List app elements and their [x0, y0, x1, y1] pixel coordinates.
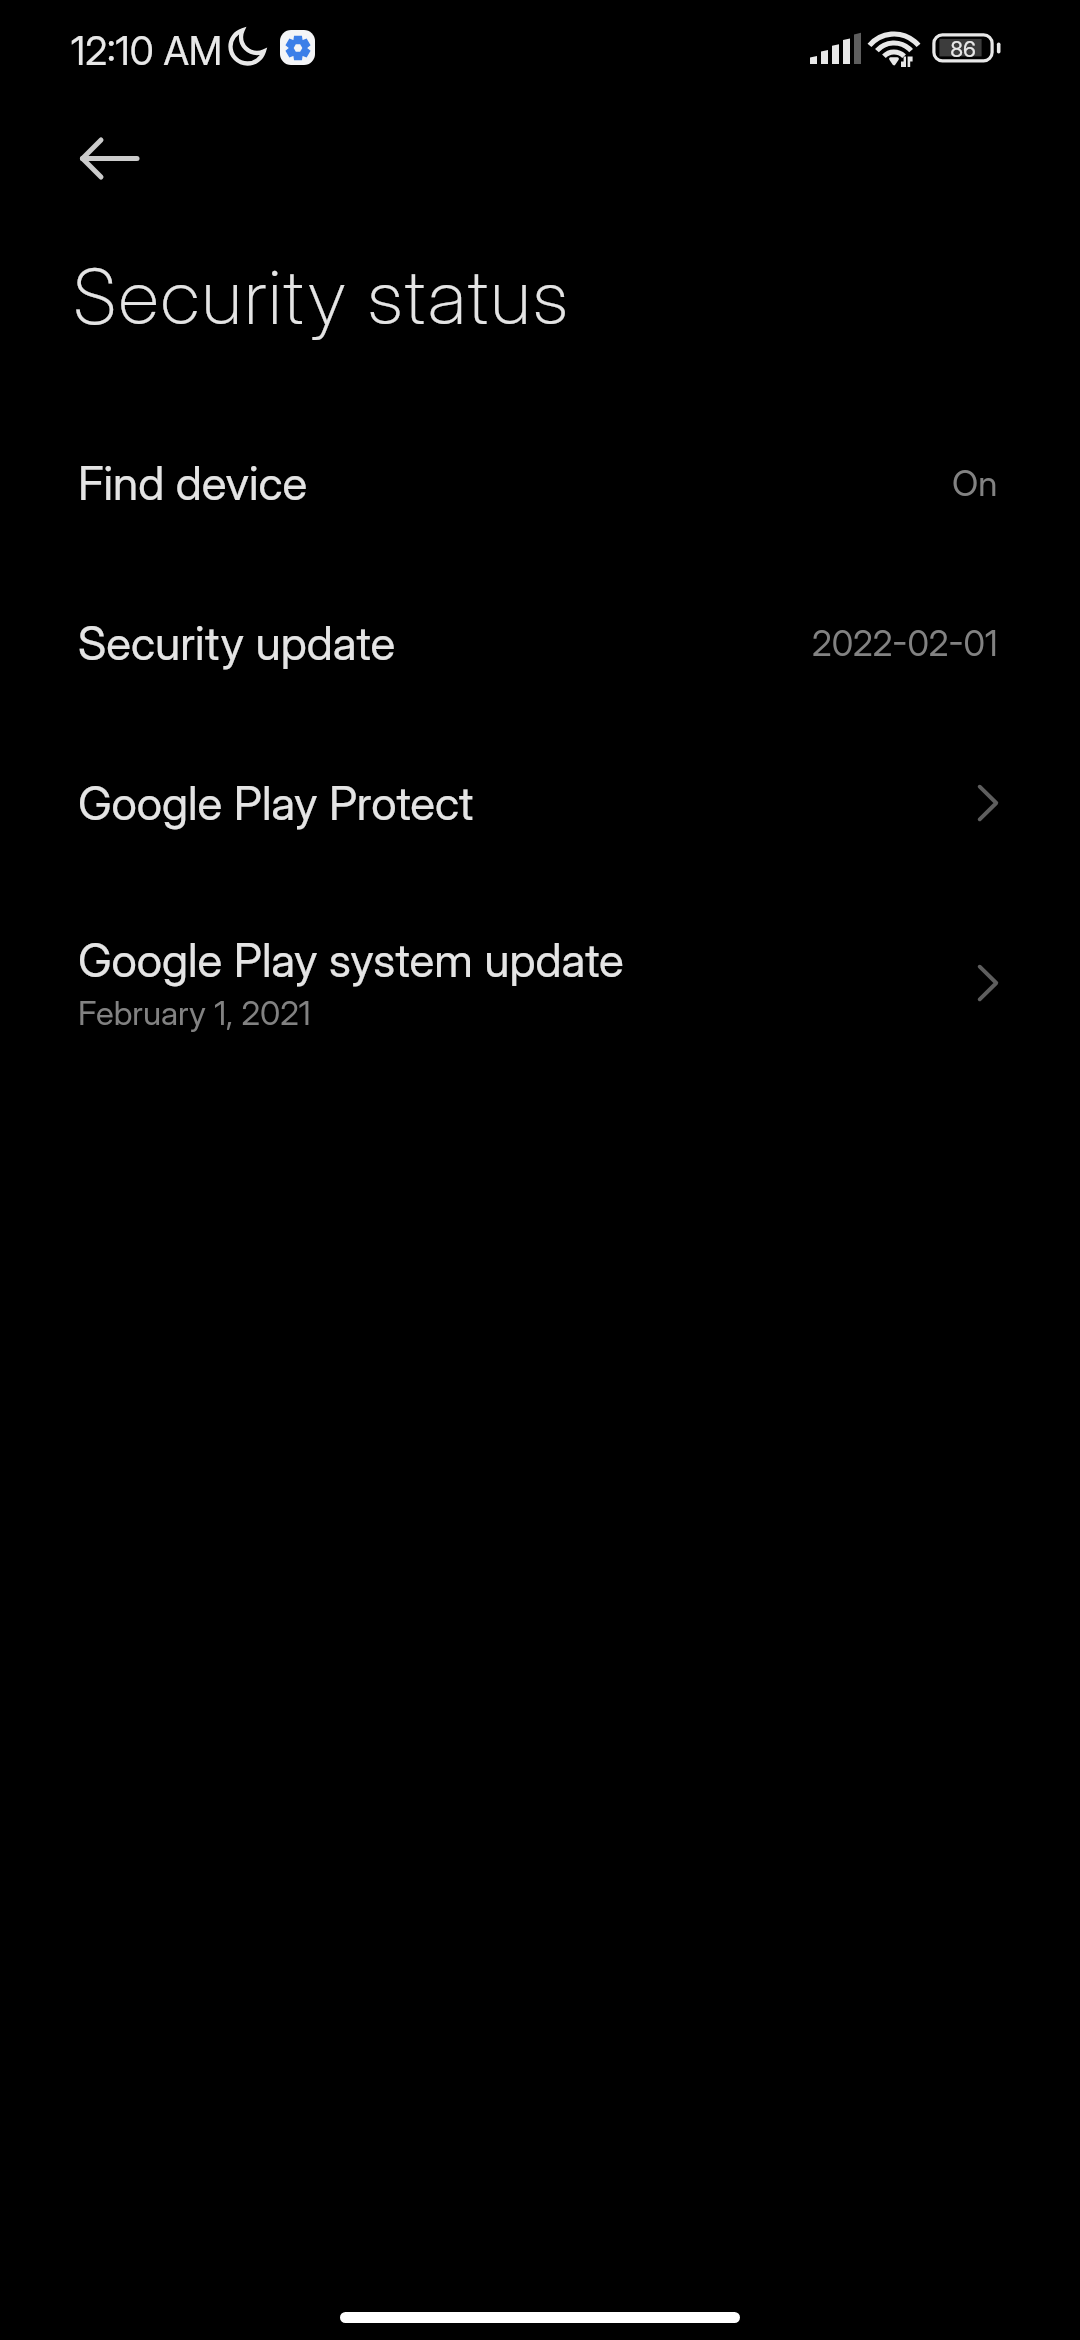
staticText: Google Play system update	[78, 932, 624, 988]
button[interactable]: Find device	[0, 403, 1080, 563]
staticText: 2022-02-01	[812, 622, 998, 664]
staticText: Security update	[78, 615, 396, 671]
staticText: On	[952, 462, 998, 504]
staticText: Find device	[78, 455, 308, 511]
staticText: 12:10 AM	[71, 27, 223, 74]
staticText: February 1, 2021	[78, 993, 311, 1033]
other: Do not disturb	[230, 29, 266, 65]
staticText: 86	[938, 36, 988, 63]
staticText: Google Play Protect	[78, 775, 474, 831]
staticText: Security status	[73, 250, 571, 342]
button[interactable]: Google Play system update	[0, 883, 1080, 1063]
button[interactable]: Security update	[0, 563, 1080, 723]
button[interactable]: Back	[52, 130, 110, 188]
other: Settings	[280, 30, 315, 65]
button[interactable]: Google Play Protect	[0, 723, 1080, 883]
